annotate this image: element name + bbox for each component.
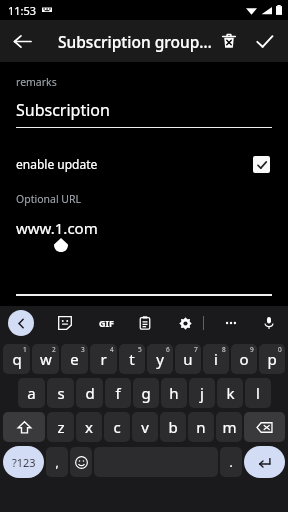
button[interactable]: s [47,378,74,408]
staticText: i [214,349,218,369]
button[interactable]: x [76,412,102,442]
button[interactable]: More options [220,312,242,334]
staticText: r [100,349,107,369]
staticText: 6 [166,345,170,354]
staticText: d [85,383,95,403]
button[interactable]: z [47,412,74,442]
button[interactable]: f [105,378,131,408]
staticText: 11:53 [8,3,37,18]
staticText: remarks [16,75,57,89]
button[interactable]: e [61,344,88,374]
button[interactable]: y [147,344,173,374]
button[interactable]: Back [4,23,40,59]
button[interactable]: t [119,344,145,374]
button[interactable]: o [231,344,257,374]
button[interactable]: Backspace [244,412,285,442]
staticText: 5 [138,345,142,354]
staticText: j [200,383,204,403]
staticText: t [129,349,135,369]
button[interactable]: h [161,378,187,408]
button[interactable]: GIF [94,311,118,335]
staticText: q [12,349,22,369]
staticText: s [57,383,65,403]
button[interactable]: , [46,447,68,477]
staticText: w [40,349,52,369]
button[interactable]: Stickers [54,312,76,334]
staticText: f [115,383,121,403]
staticText: Subscription group… [58,31,212,52]
staticText: 4 [110,345,114,354]
staticText: www.1.com [16,218,98,238]
button[interactable]: Voice input [258,312,280,334]
button[interactable]: l [245,378,271,408]
staticText: Subscription [16,99,110,121]
staticText: enable update [16,156,98,172]
button[interactable]: w [32,344,59,374]
button[interactable]: a [18,378,45,408]
button[interactable]: q [3,344,30,374]
staticText: n [196,417,206,437]
staticText: c [113,417,121,437]
staticText: p [267,349,277,369]
staticText: e [70,349,79,369]
button[interactable]: Back [8,310,34,336]
button[interactable]: g [133,378,159,408]
staticText: . [229,454,233,470]
button[interactable]: i [203,344,229,374]
staticText: 2 [52,345,56,354]
button[interactable]: k [217,378,243,408]
staticText: o [239,349,249,369]
button[interactable]: n [188,412,214,442]
staticText: GIF [99,317,114,329]
button[interactable]: j [189,378,215,408]
button[interactable]: . [220,447,242,477]
button[interactable]: Settings [174,312,196,334]
staticText: 1 [23,345,27,354]
button[interactable]: r [90,344,117,374]
staticText: x [85,417,93,437]
staticText: 8 [222,345,226,354]
staticText: z [57,417,65,437]
staticText: ?123 [12,455,36,470]
button[interactable]: v [132,412,158,442]
button[interactable]: Delete [212,24,246,58]
staticText: g [141,383,151,403]
button[interactable]: Clipboard [134,312,156,334]
staticText: Optional URL [16,192,82,206]
staticText: 3 [81,345,85,354]
button[interactable]: enable update [0,150,288,178]
staticText: h [169,383,179,403]
button[interactable]: b [160,412,186,442]
button[interactable]: d [76,378,103,408]
staticText: v [141,417,149,437]
staticText: k [226,383,235,403]
staticText: a [27,383,36,403]
button[interactable]: Emoji [70,447,92,477]
staticText: y [156,349,164,369]
button[interactable]: Enter [244,446,285,478]
staticText: 0 [278,345,282,354]
button[interactable]: p [259,344,285,374]
staticText: 9 [250,345,254,354]
staticText: u [183,349,193,369]
staticText: b [168,417,178,437]
button[interactable]: ?123 [3,446,44,478]
staticText: m [222,417,237,437]
button[interactable]: Shift [3,412,45,442]
button[interactable]: c [104,412,130,442]
staticText: 7 [194,345,198,354]
button[interactable]: u [175,344,201,374]
staticText: , [55,454,59,470]
button[interactable]: Save [246,23,282,59]
button[interactable]: m [216,412,242,442]
staticText: l [256,383,260,403]
